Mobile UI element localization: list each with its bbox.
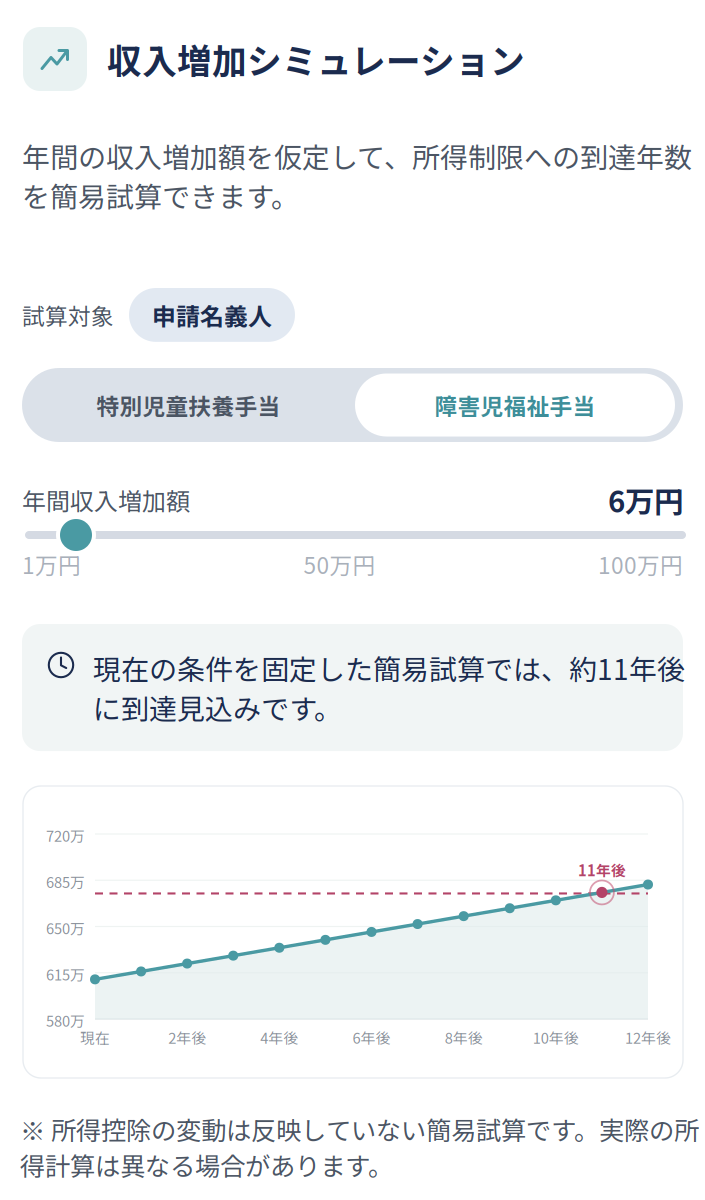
staticText: 720万 [46,825,85,846]
staticText: 11年後 [578,859,626,880]
staticText: 12年後 [625,1027,671,1048]
staticText: 年間収入増加額 [22,483,190,517]
staticText: 8年後 [445,1027,483,1048]
staticText: 1万円 [22,548,81,580]
staticText: 申請名義人 [152,298,272,332]
staticText: 6年後 [352,1027,390,1048]
staticText: 10年後 [533,1027,579,1048]
staticText: 650万 [46,917,85,938]
staticText: 特別児童扶養手当 [96,389,280,421]
button[interactable]: 障害児福祉手当 [355,373,675,436]
button[interactable]: 申請名義人 [129,288,295,342]
staticText: 試算対象 [22,299,114,331]
staticText: 6万円 [608,479,683,520]
staticText: 580万 [46,1010,85,1031]
staticText: ※ 所得控除の変動は反映していない簡易試算です。実際の所得計算は異なる場合があり… [20,1111,699,1182]
staticText: 615万 [46,964,85,984]
button[interactable]: 特別児童扶養手当 [22,368,355,442]
staticText: 現在の条件を固定した簡易試算では、約11年後に到達見込みです。 [93,648,685,727]
staticText: 収入増加シミュレーション [107,34,525,83]
staticText: 2年後 [168,1027,206,1048]
staticText: 障害児福祉手当 [434,389,595,421]
staticText: 年間の収入増加額を仮定して、所得制限への到達年数を簡易試算できます。 [22,136,692,215]
staticText: 100万円 [598,548,683,580]
staticText: 50万円 [303,548,375,580]
staticText: 現在 [80,1027,110,1048]
staticText: 4年後 [260,1027,298,1048]
staticText: 685万 [46,871,85,892]
